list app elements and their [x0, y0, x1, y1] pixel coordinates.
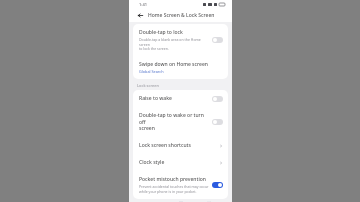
button[interactable]: Toggle off — [212, 96, 223, 102]
button[interactable]: Double-tap to lock — [133, 24, 228, 56]
button[interactable]: Clock style — [133, 154, 228, 171]
staticText: Double-tap to lock — [139, 29, 183, 36]
button[interactable]: Pocket mistouch prevention — [133, 171, 228, 199]
button[interactable]: Raise to wake — [133, 90, 228, 107]
staticText: Clock style — [139, 159, 165, 166]
button[interactable]: Back — [136, 11, 145, 20]
staticText: Raise to wake — [139, 95, 172, 102]
button[interactable]: Lock screen shortcuts — [133, 137, 228, 154]
button[interactable]: Toggle off — [212, 37, 223, 43]
staticText: Double-tap to wake or turn off screen — [139, 112, 209, 132]
staticText: Lock screen shortcuts — [139, 142, 191, 149]
button[interactable]: Swipe down on Home screen — [133, 56, 228, 79]
staticText: Home Screen & Lock Screen — [148, 12, 215, 19]
staticText: Global Search — [139, 69, 164, 74]
staticText: Double-tap a blank area on the Home scre… — [139, 37, 209, 51]
staticText: Prevent accidental touches that may occu… — [139, 184, 209, 194]
staticText: Lock screen — [137, 83, 160, 88]
staticText: 1:41 — [139, 2, 147, 7]
button[interactable]: Toggle on — [212, 182, 223, 188]
staticText: Swipe down on Home screen — [139, 61, 208, 68]
button[interactable]: Double-tap to wake or turn off screen — [133, 107, 228, 137]
staticText: Pocket mistouch prevention — [139, 176, 206, 183]
button[interactable]: Toggle off — [212, 119, 223, 125]
